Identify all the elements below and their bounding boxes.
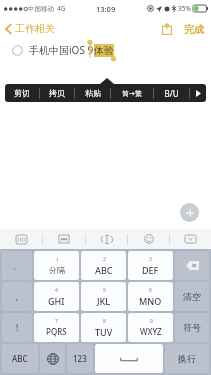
- other: Switch language: [47, 353, 59, 365]
- staticText: 粘贴: [85, 88, 101, 98]
- staticText: 6: [149, 287, 152, 294]
- staticText: JKL: [97, 295, 111, 307]
- staticText: 清空: [183, 291, 201, 302]
- staticText: ,: [16, 291, 19, 302]
- staticText: WXYZ: [140, 326, 162, 337]
- button[interactable]: Cursor: [86, 229, 127, 249]
- staticText: 7: [55, 318, 58, 325]
- staticText: 体验: [94, 44, 114, 57]
- button[interactable]: 123: [67, 344, 93, 373]
- button[interactable]: ,: [2, 282, 32, 311]
- button[interactable]: 9: [128, 313, 173, 342]
- staticText: TUV: [95, 326, 113, 338]
- staticText: 拷贝: [49, 88, 65, 98]
- button[interactable]: Switch language: [40, 344, 65, 373]
- button[interactable]: Skin: [43, 229, 85, 249]
- button[interactable]: ABC: [2, 344, 38, 373]
- button[interactable]: Emoji: [128, 229, 169, 249]
- staticText: !: [16, 322, 19, 333]
- staticText: 8: [103, 318, 106, 325]
- button[interactable]: 8: [81, 313, 126, 342]
- button[interactable]: Share: [158, 19, 176, 39]
- button[interactable]: 拷贝: [40, 84, 74, 102]
- staticText: PQRS: [46, 326, 67, 337]
- button[interactable]: Add: [180, 203, 199, 222]
- button[interactable]: 5: [81, 282, 126, 311]
- staticText: 13:09: [96, 4, 116, 14]
- button[interactable]: 7: [34, 313, 79, 342]
- button[interactable]: Hide keyboard: [170, 229, 211, 249]
- staticText: MNO: [139, 295, 162, 307]
- button[interactable]: 3: [128, 251, 173, 280]
- staticText: ABC: [12, 353, 28, 364]
- button[interactable]: 粘贴: [75, 84, 110, 102]
- staticText: 4: [55, 287, 58, 294]
- staticText: B/U: [164, 88, 179, 99]
- button[interactable]: More: [190, 84, 206, 102]
- staticText: 9: [150, 318, 153, 325]
- staticText: 简→繁: [122, 89, 142, 98]
- staticText: ABC: [95, 264, 113, 276]
- button[interactable]: Space: [95, 344, 163, 373]
- button[interactable]: B/U: [154, 84, 189, 102]
- button[interactable]: 2: [81, 251, 126, 280]
- staticText: 剪切: [14, 88, 30, 98]
- staticText: 1: [56, 257, 59, 264]
- button[interactable]: 简→繁: [111, 84, 153, 102]
- button[interactable]: [175, 251, 209, 280]
- button[interactable]: !: [2, 313, 32, 342]
- button[interactable]: 6: [128, 282, 173, 311]
- button[interactable]: 工作相关: [0, 19, 61, 38]
- button[interactable]: Keyboard: [0, 229, 42, 249]
- staticText: 完成: [184, 23, 204, 36]
- staticText: 35%: [178, 4, 191, 13]
- button[interactable]: 1: [34, 251, 79, 280]
- staticText: 分隔: [49, 265, 65, 275]
- button[interactable]: 剪切: [5, 84, 39, 102]
- other: Space: [117, 355, 141, 363]
- staticText: GHI: [48, 295, 65, 307]
- button[interactable]: 换行: [165, 344, 209, 373]
- staticText: 3: [149, 256, 152, 263]
- staticText: 、: [13, 261, 21, 271]
- staticText: 中国移动: [28, 5, 54, 13]
- staticText: 手机中国iOS 9: [29, 43, 94, 57]
- button[interactable]: 完成: [182, 20, 206, 39]
- staticText: 5: [103, 287, 106, 294]
- staticText: 2: [103, 256, 106, 263]
- staticText: 4G: [57, 4, 66, 13]
- staticText: 符号: [183, 322, 201, 333]
- staticText: 工作相关: [15, 22, 55, 35]
- staticText: 换行: [178, 353, 196, 364]
- staticText: 123: [73, 353, 87, 364]
- button[interactable]: 符号: [175, 313, 209, 342]
- staticText: DEF: [142, 264, 159, 276]
- button[interactable]: 清空: [175, 282, 209, 311]
- button[interactable]: 4: [34, 282, 79, 311]
